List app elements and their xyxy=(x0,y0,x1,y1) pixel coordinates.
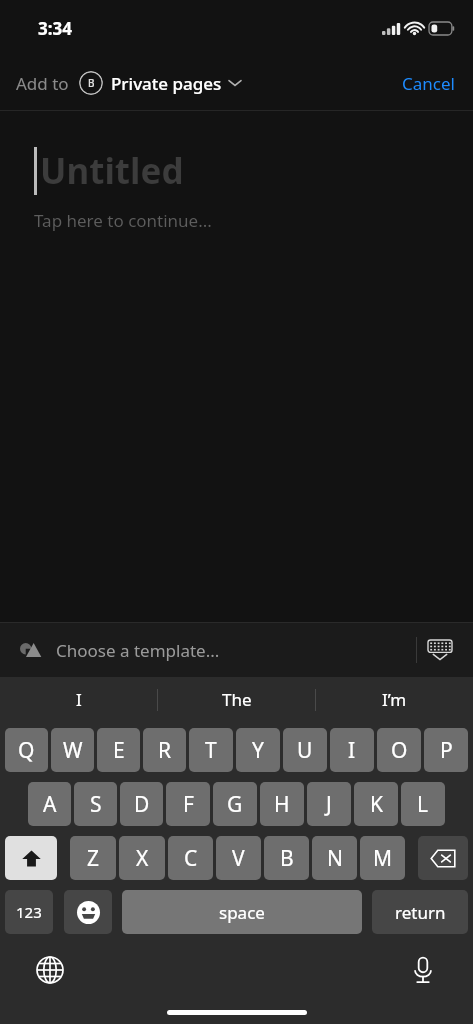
staticText: R xyxy=(158,736,172,765)
button[interactable]: N xyxy=(312,836,357,880)
button[interactable]: H xyxy=(260,782,304,826)
staticText: L xyxy=(417,790,429,819)
staticText: G xyxy=(227,790,243,819)
button[interactable]: O xyxy=(377,728,421,772)
staticText: Q xyxy=(18,736,35,765)
button[interactable]: Hide keyboard xyxy=(417,627,463,673)
button[interactable]: I xyxy=(0,677,157,722)
button[interactable]: E xyxy=(97,728,140,772)
button[interactable]: Backspace xyxy=(418,836,468,880)
staticText: B xyxy=(88,76,95,90)
button[interactable]: return xyxy=(372,890,468,934)
button[interactable]: Emoji xyxy=(64,890,112,934)
button[interactable]: F xyxy=(166,782,210,826)
button[interactable]: space xyxy=(122,890,362,934)
button[interactable]: R xyxy=(143,728,186,772)
button[interactable]: Dictation xyxy=(401,948,445,992)
staticText: return xyxy=(395,901,446,924)
staticText: T xyxy=(205,736,217,765)
staticText: Y xyxy=(252,736,264,765)
button[interactable]: Untitled xyxy=(0,111,473,622)
staticText: E xyxy=(113,736,125,765)
button[interactable]: X xyxy=(119,836,165,880)
staticText: K xyxy=(370,790,383,819)
staticText: space xyxy=(219,901,265,924)
button[interactable]: W xyxy=(51,728,94,772)
button[interactable]: G xyxy=(213,782,257,826)
button[interactable]: P xyxy=(424,728,468,772)
button[interactable]: I’m xyxy=(316,677,473,722)
button[interactable]: S xyxy=(74,782,117,826)
staticText: Tap here to continue... xyxy=(34,209,212,232)
button[interactable]: A xyxy=(28,782,71,826)
staticText: Untitled xyxy=(40,147,184,195)
staticText: X xyxy=(136,844,149,873)
button[interactable]: I xyxy=(330,728,374,772)
staticText: S xyxy=(90,790,102,819)
staticText: P xyxy=(440,736,453,765)
staticText: The xyxy=(222,688,252,711)
button[interactable]: Y xyxy=(236,728,280,772)
staticText: J xyxy=(326,790,332,819)
button[interactable]: U xyxy=(283,728,327,772)
staticText: 3:34 xyxy=(38,17,72,40)
staticText: I’m xyxy=(382,688,407,711)
staticText: W xyxy=(63,736,83,765)
button[interactable]: Change keyboard language xyxy=(28,948,72,992)
button[interactable]: T xyxy=(189,728,233,772)
button[interactable]: Z xyxy=(70,836,116,880)
button[interactable]: K xyxy=(354,782,398,826)
staticText: F xyxy=(183,790,194,819)
staticText: Private pages xyxy=(111,72,222,95)
staticText: I xyxy=(348,736,356,765)
staticText: A xyxy=(43,790,57,819)
button[interactable]: C xyxy=(168,836,213,880)
staticText: H xyxy=(274,790,290,819)
staticText: V xyxy=(232,844,245,873)
staticText: Add to xyxy=(16,72,69,95)
button[interactable]: B xyxy=(264,836,309,880)
button[interactable]: V xyxy=(216,836,261,880)
button[interactable]: Choose a template... xyxy=(0,623,232,677)
button[interactable]: 123 xyxy=(5,890,53,934)
button[interactable]: Q xyxy=(5,728,48,772)
staticText: Choose a template... xyxy=(56,639,220,662)
button[interactable]: The xyxy=(158,677,315,722)
staticText: M xyxy=(373,844,393,873)
staticText: D xyxy=(134,790,150,819)
staticText: N xyxy=(327,844,343,873)
staticText: C xyxy=(184,844,198,873)
staticText: O xyxy=(391,736,408,765)
staticText: 123 xyxy=(16,902,42,922)
staticText: U xyxy=(297,736,313,765)
button[interactable]: Add to xyxy=(16,71,241,95)
button[interactable]: L xyxy=(401,782,445,826)
button[interactable]: M xyxy=(360,836,405,880)
button[interactable]: D xyxy=(120,782,163,826)
staticText: Cancel xyxy=(402,72,455,95)
button[interactable]: Shift xyxy=(5,836,57,880)
button[interactable]: Cancel xyxy=(384,62,473,105)
staticText: I xyxy=(76,688,82,711)
button[interactable]: J xyxy=(307,782,351,826)
staticText: Z xyxy=(87,844,100,873)
staticText: B xyxy=(280,844,294,873)
